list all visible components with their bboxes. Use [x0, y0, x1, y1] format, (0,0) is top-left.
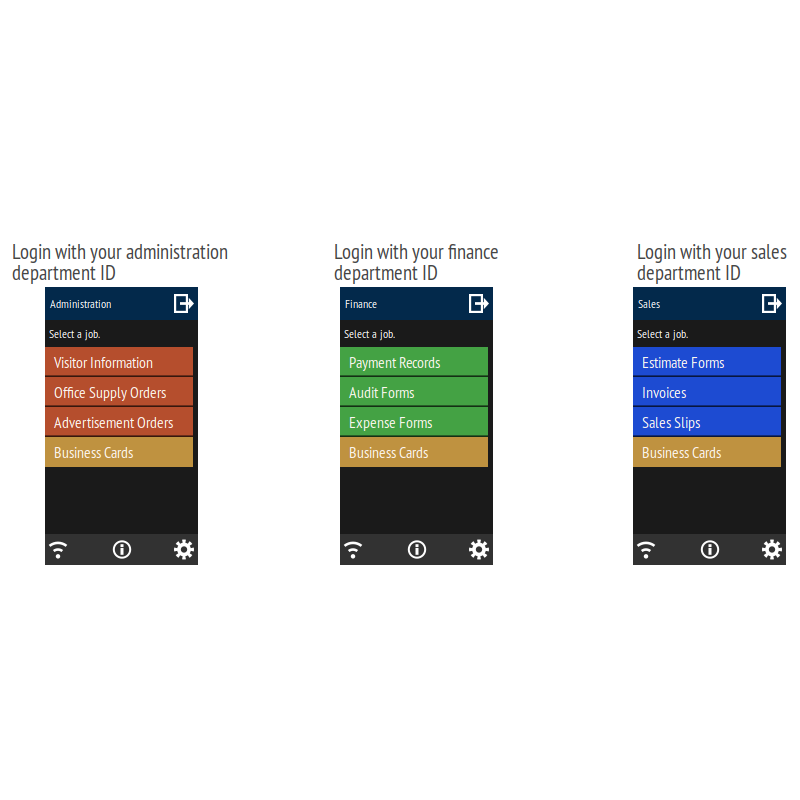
button[interactable]: Business Cards — [633, 437, 786, 467]
staticText: Login with your finance — [334, 238, 499, 265]
staticText: Office Supply Orders — [54, 382, 166, 402]
staticText: Expense Forms — [349, 412, 432, 432]
button[interactable]: Office Supply Orders — [45, 377, 198, 407]
staticText: Business Cards — [54, 442, 133, 462]
staticText: Select a job. — [49, 326, 100, 341]
button[interactable]: Invoices — [633, 377, 786, 407]
staticText: Select a job. — [344, 326, 395, 341]
staticText: Visitor Information — [54, 352, 153, 372]
button[interactable]: Log out — [174, 287, 194, 320]
button[interactable]: Business Cards — [340, 437, 493, 467]
staticText: Login with your administration — [12, 238, 228, 265]
staticText: department ID — [12, 259, 116, 286]
button[interactable]: Audit Forms — [340, 377, 493, 407]
button[interactable]: Estimate Forms — [633, 347, 786, 377]
staticText: Select a job. — [637, 326, 688, 341]
button[interactable]: Information — [404, 534, 430, 565]
staticText: Advertisement Orders — [54, 412, 173, 432]
button[interactable]: Information — [697, 534, 723, 565]
button[interactable]: Log out — [469, 287, 489, 320]
staticText: Audit Forms — [349, 382, 414, 402]
staticText: department ID — [637, 259, 741, 286]
staticText: Business Cards — [349, 442, 428, 462]
button[interactable]: Sales Slips — [633, 407, 786, 437]
staticText: Administration — [50, 296, 111, 311]
staticText: department ID — [334, 259, 438, 286]
button[interactable]: Network — [45, 534, 71, 565]
button[interactable]: Advertisement Orders — [45, 407, 198, 437]
staticText: Business Cards — [642, 442, 721, 462]
button[interactable]: Settings — [466, 534, 492, 565]
button[interactable]: Visitor Information — [45, 347, 198, 377]
button[interactable]: Business Cards — [45, 437, 198, 467]
button[interactable]: Network — [633, 534, 659, 565]
staticText: Finance — [345, 296, 377, 311]
staticText: Sales — [638, 296, 660, 311]
button[interactable]: Network — [340, 534, 366, 565]
staticText: Sales Slips — [642, 412, 700, 432]
button[interactable]: Payment Records — [340, 347, 493, 377]
button[interactable]: Expense Forms — [340, 407, 493, 437]
button[interactable]: Information — [109, 534, 135, 565]
staticText: Invoices — [642, 382, 686, 402]
button[interactable]: Log out — [762, 287, 782, 320]
button[interactable]: Settings — [171, 534, 197, 565]
staticText: Login with your sales — [637, 238, 787, 265]
button[interactable]: Settings — [759, 534, 785, 565]
staticText: Estimate Forms — [642, 352, 724, 372]
staticText: Payment Records — [349, 352, 440, 372]
